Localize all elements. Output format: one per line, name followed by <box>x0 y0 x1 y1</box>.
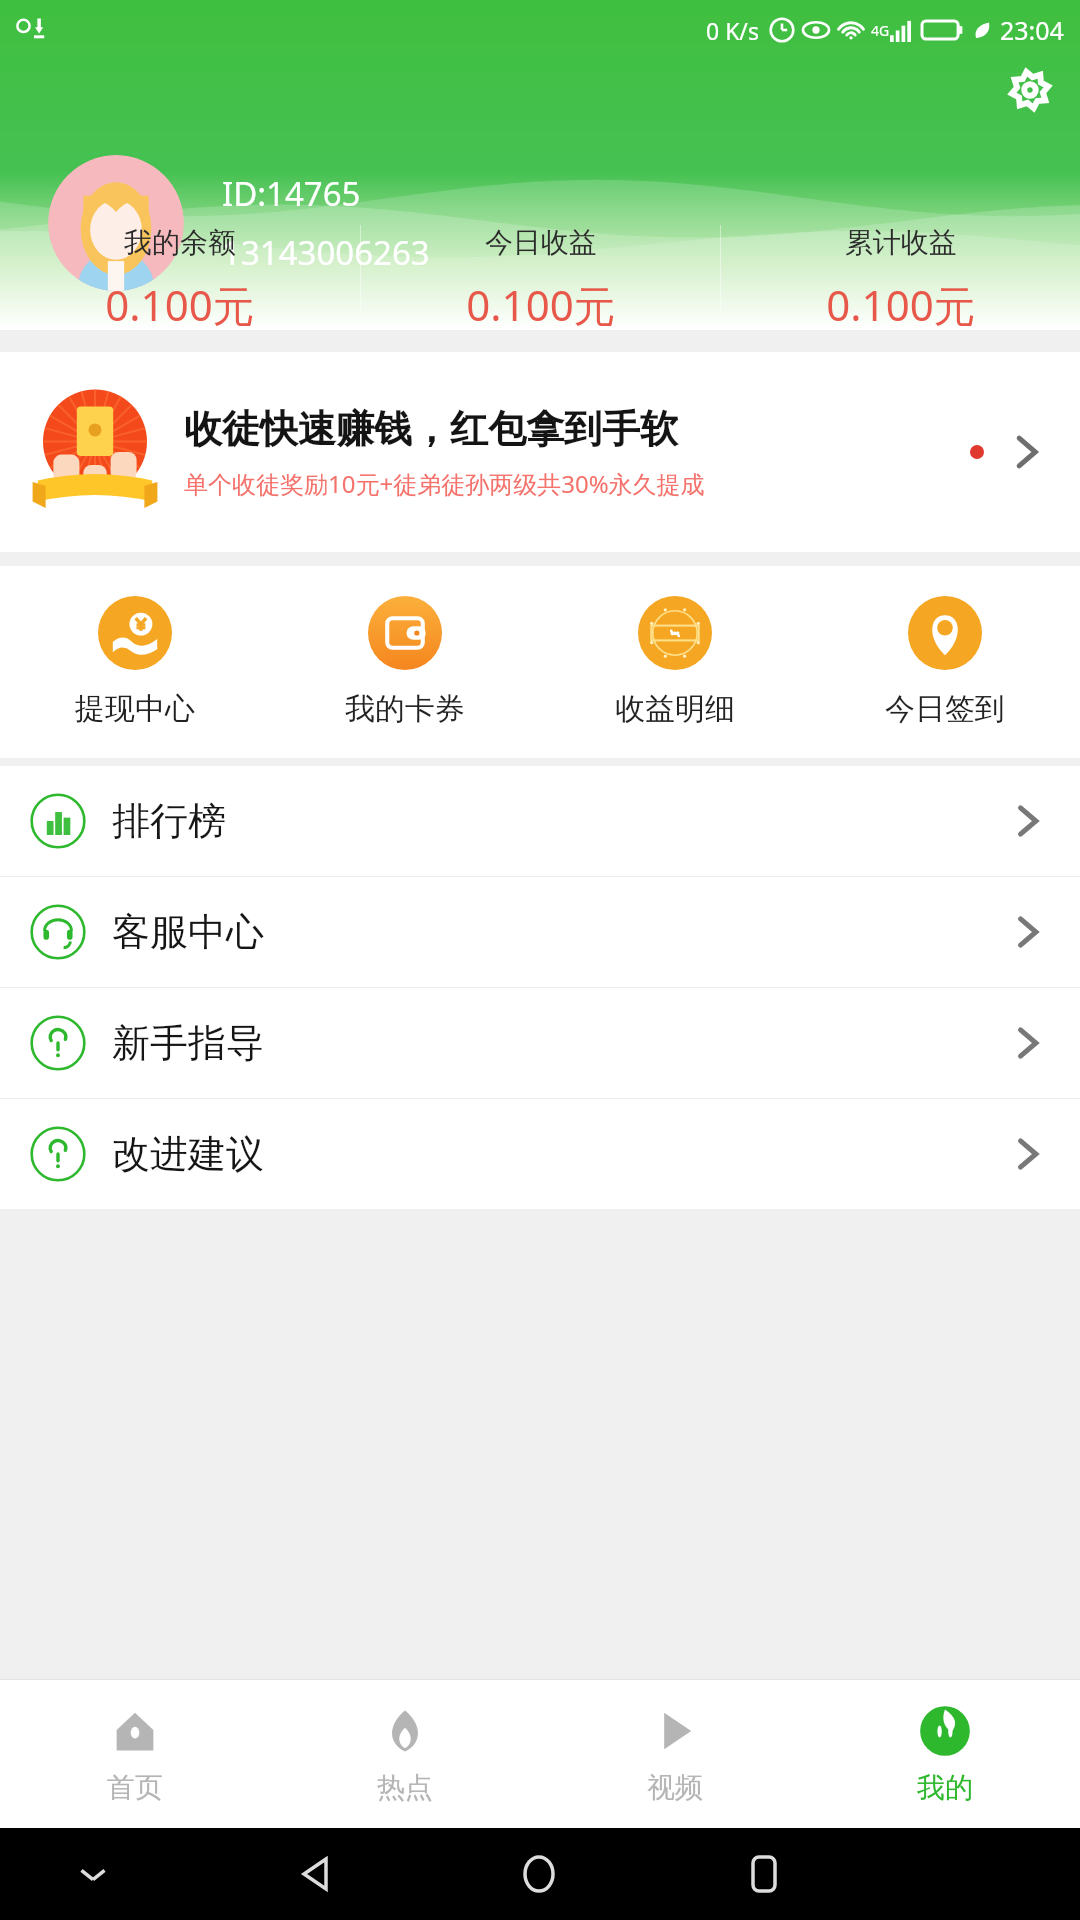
button[interactable]: 今日收益 <box>361 225 720 330</box>
button[interactable]: Home <box>514 1849 564 1899</box>
button[interactable]: Recents <box>739 1849 789 1899</box>
staticText: 0.100元 <box>105 276 255 330</box>
staticText: 新手指导 <box>112 1019 264 1067</box>
button[interactable]: 改进建议 <box>0 1099 1080 1209</box>
button[interactable]: 收徒快速赚钱，红包拿到手软 <box>0 352 1080 552</box>
button[interactable]: 客服中心 <box>0 877 1080 987</box>
staticText: 视频 <box>647 1770 703 1805</box>
staticText: 我的余额 <box>124 225 236 260</box>
staticText: 我的卡券 <box>345 690 465 728</box>
button[interactable]: 首页 <box>0 1680 270 1828</box>
staticText: 提现中心 <box>75 690 195 728</box>
staticText: ID:14765 <box>222 171 361 216</box>
staticText: 今日签到 <box>885 690 1005 728</box>
button[interactable]: 我的卡券 <box>270 566 540 758</box>
staticText: 我的 <box>917 1770 973 1805</box>
button[interactable]: 收益明细 <box>540 566 810 758</box>
button[interactable] <box>48 155 184 291</box>
button[interactable]: 排行榜 <box>0 766 1080 876</box>
staticText: 4G <box>871 21 890 40</box>
staticText: 0.100元 <box>826 276 976 330</box>
button[interactable]: 累计收益 <box>721 225 1080 330</box>
staticText: 收益明细 <box>615 690 735 728</box>
button[interactable]: 热点 <box>270 1680 540 1828</box>
staticText: 改进建议 <box>112 1130 264 1178</box>
staticText: 收徒快速赚钱，红包拿到手软 <box>184 405 678 453</box>
button[interactable]: 今日签到 <box>810 566 1080 758</box>
button[interactable]: 视频 <box>540 1680 810 1828</box>
button[interactable]: Settings <box>1002 62 1058 118</box>
button[interactable]: 我的余额 <box>0 225 360 330</box>
staticText: 排行榜 <box>112 797 226 845</box>
staticText: 23:04 <box>1000 13 1064 47</box>
button[interactable]: 我的 <box>810 1680 1080 1828</box>
staticText: 热点 <box>377 1770 433 1805</box>
staticText: 0 K/s <box>706 15 759 46</box>
button[interactable]: 提现中心 <box>0 566 270 758</box>
button[interactable]: Back <box>290 1849 340 1899</box>
staticText: 今日收益 <box>485 225 597 260</box>
staticText: 单个收徒奖励10元+徒弟徒孙两级共30%永久提成 <box>184 467 705 500</box>
staticText: 0.100元 <box>466 276 616 330</box>
staticText: 累计收益 <box>845 225 957 260</box>
staticText: 13143006263 <box>222 230 430 275</box>
button[interactable]: Hide <box>70 1851 116 1897</box>
staticText: 首页 <box>107 1770 163 1805</box>
button[interactable]: 新手指导 <box>0 988 1080 1098</box>
staticText: 客服中心 <box>112 908 264 956</box>
